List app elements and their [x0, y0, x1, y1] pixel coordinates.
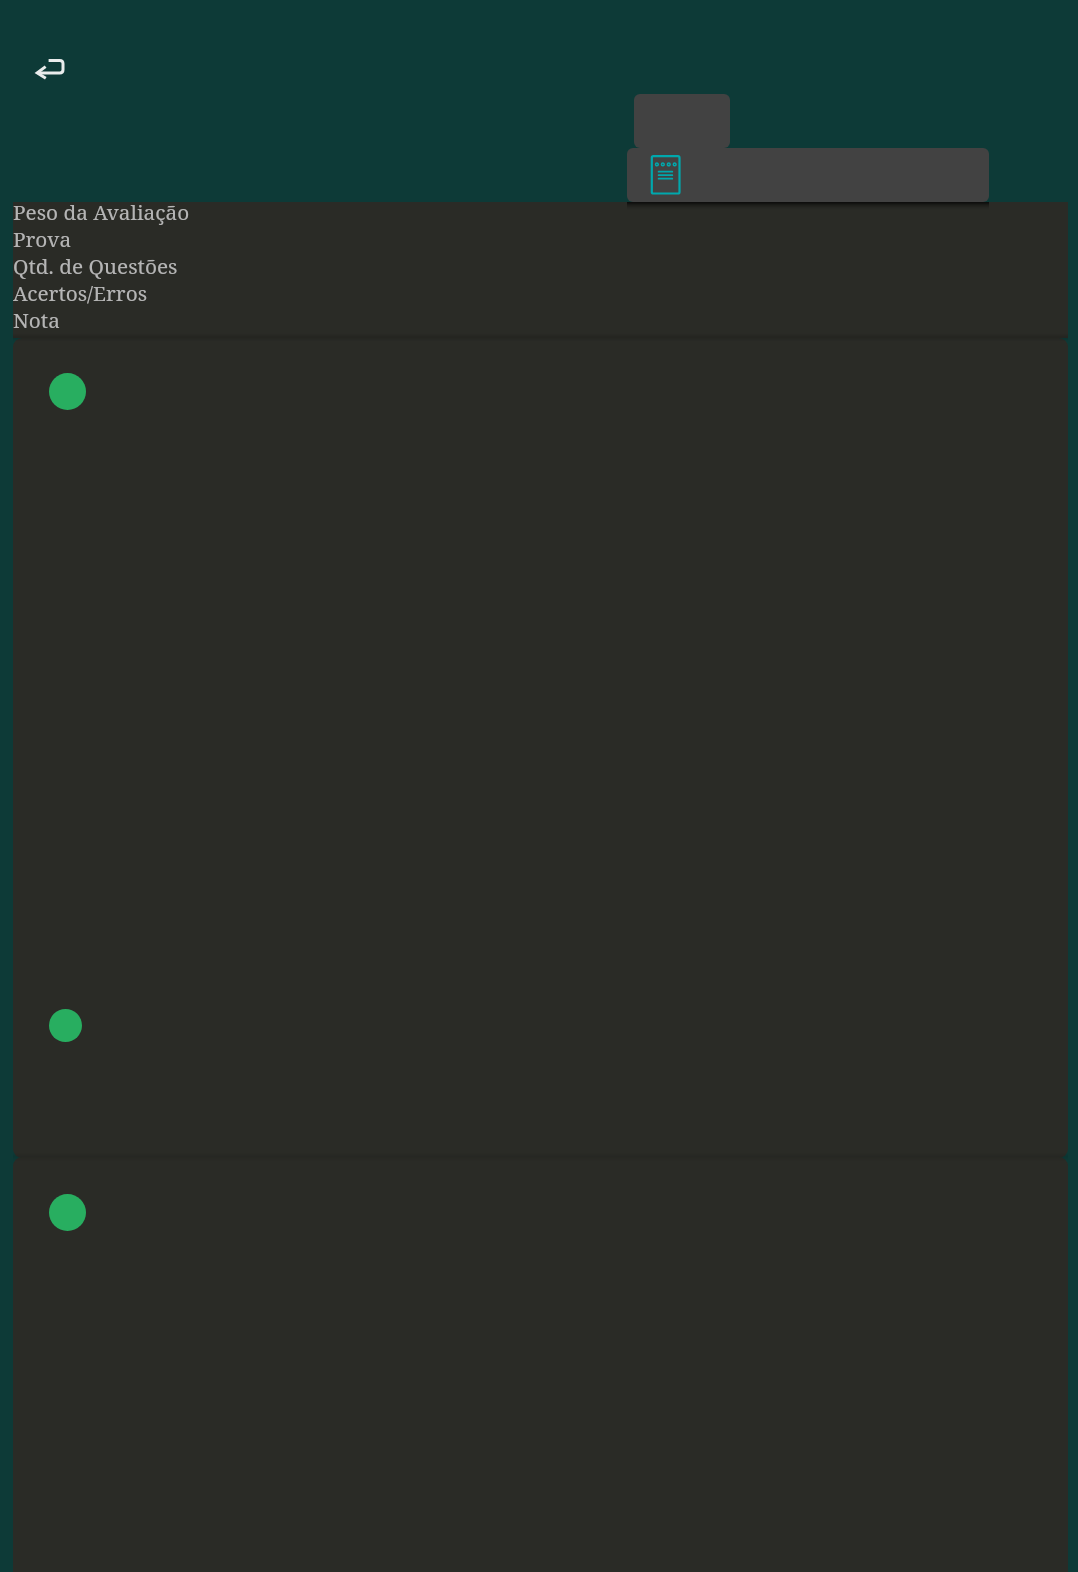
button[interactable]: Filtro [634, 94, 730, 148]
staticText: Peso da Avaliação Prova Qtd. de Questões… [13, 198, 190, 334]
button[interactable]: Back [12, 32, 84, 104]
button[interactable]: Avaliação 2 [13, 1157, 1068, 1572]
button[interactable]: Avaliação 1 [13, 338, 1068, 1158]
button[interactable]: Avaliações [627, 148, 989, 202]
